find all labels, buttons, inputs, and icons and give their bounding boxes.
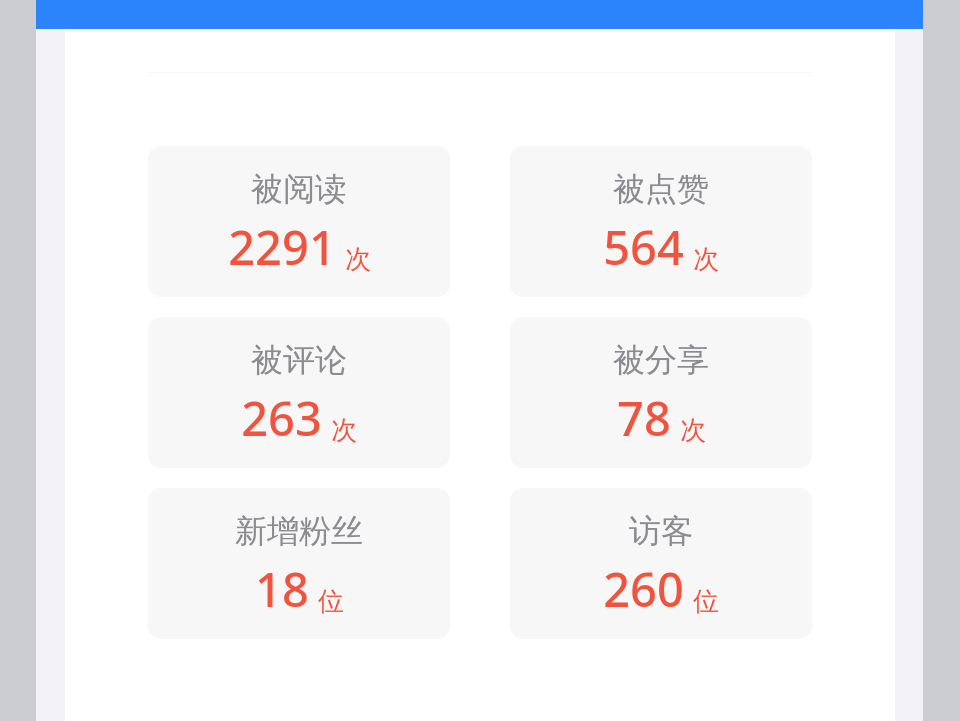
staticText: 次	[331, 414, 357, 447]
staticText: 被点赞	[613, 169, 709, 209]
staticText: 次	[680, 414, 706, 447]
button[interactable]: 被分享	[510, 317, 812, 468]
staticText: 被分享	[613, 340, 709, 380]
staticText: 次	[693, 243, 719, 276]
staticText: 访客	[629, 511, 693, 551]
staticText: 260	[603, 557, 684, 621]
staticText: 位	[318, 585, 344, 618]
button[interactable]: 被点赞	[510, 146, 812, 297]
staticText: 次	[345, 243, 371, 276]
staticText: 被评论	[251, 340, 347, 380]
button[interactable]: 访客	[510, 488, 812, 639]
staticText: 被阅读	[251, 169, 347, 209]
staticText: 18	[255, 557, 309, 621]
staticText: 78	[617, 386, 671, 450]
staticText: 新增粉丝	[235, 511, 363, 551]
button[interactable]: 新增粉丝	[148, 488, 450, 639]
staticText: 564	[603, 215, 684, 279]
staticText: 位	[693, 585, 719, 618]
staticText: 2291	[228, 215, 336, 279]
button[interactable]: 被阅读	[148, 146, 450, 297]
staticText: 263	[241, 386, 322, 450]
button[interactable]: 被评论	[148, 317, 450, 468]
